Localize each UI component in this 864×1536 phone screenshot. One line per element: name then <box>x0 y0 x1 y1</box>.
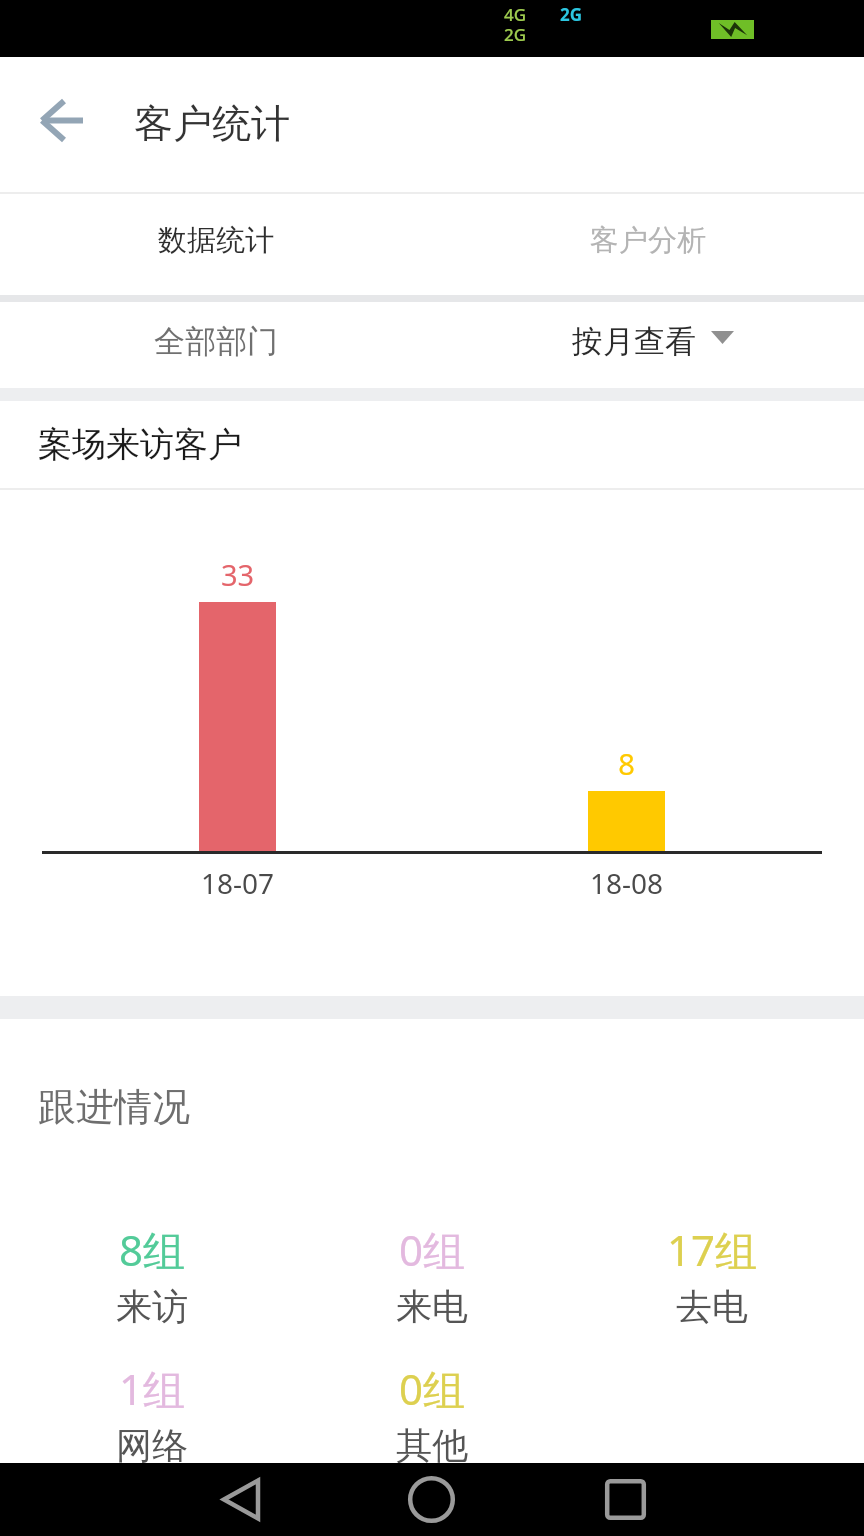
button[interactable]: Back <box>18 77 106 171</box>
staticText: 8 <box>558 744 695 783</box>
button[interactable]: 0组 <box>342 1221 522 1331</box>
staticText: 来电 <box>342 1284 522 1329</box>
staticText: 4G <box>504 3 527 26</box>
button[interactable]: Home <box>386 1463 476 1536</box>
button[interactable]: 数据统计 <box>0 194 432 295</box>
button[interactable]: 全部部门 <box>0 302 432 388</box>
staticText: 2G <box>560 3 583 26</box>
button[interactable]: Recents <box>580 1463 670 1536</box>
staticText: 跟进情况 <box>38 1083 190 1131</box>
staticText: 17组 <box>622 1221 802 1278</box>
staticText: 按月查看 <box>572 322 696 361</box>
button[interactable]: 8组 <box>62 1221 242 1331</box>
staticText: 其他 <box>342 1423 522 1468</box>
staticText: 来访 <box>62 1284 242 1329</box>
staticText: 客户统计 <box>134 99 290 148</box>
button[interactable]: Back <box>196 1463 286 1536</box>
staticText: 33 <box>169 555 306 594</box>
staticText: 客户分析 <box>432 222 864 259</box>
staticText: 8组 <box>62 1221 242 1278</box>
staticText: 案场来访客户 <box>38 423 242 466</box>
staticText: 0组 <box>342 1360 522 1417</box>
button[interactable]: 17组 <box>622 1221 802 1331</box>
button[interactable]: 客户分析 <box>432 194 864 295</box>
staticText: 网络 <box>62 1423 242 1468</box>
staticText: 去电 <box>622 1284 802 1329</box>
staticText: 全部部门 <box>0 322 432 361</box>
staticText: 1组 <box>62 1360 242 1417</box>
button[interactable]: 按月查看 <box>432 302 864 388</box>
staticText: 数据统计 <box>0 222 432 259</box>
staticText: 18-08 <box>558 864 695 902</box>
staticText: 0组 <box>342 1221 522 1278</box>
staticText: 18-07 <box>169 864 306 902</box>
button[interactable]: 0组 <box>342 1360 522 1470</box>
button[interactable]: 1组 <box>62 1360 242 1470</box>
staticText: 2G <box>504 23 527 46</box>
